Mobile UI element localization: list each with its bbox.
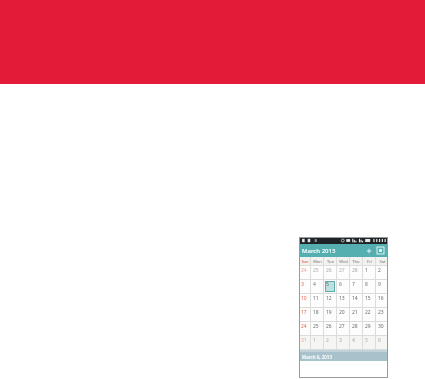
button[interactable]: 4 <box>311 280 323 293</box>
staticText: 26 <box>326 323 332 330</box>
staticText: 28 <box>352 267 358 274</box>
button[interactable]: 2 <box>324 336 336 349</box>
staticText: 31 <box>301 337 307 344</box>
button[interactable]: 24 <box>299 322 310 335</box>
staticText: 10 <box>301 295 307 302</box>
button[interactable]: 11 <box>311 294 323 307</box>
staticText: 12 <box>326 295 332 302</box>
button[interactable]: 5 <box>363 336 375 349</box>
staticText: 11 <box>313 295 319 302</box>
staticText: 24 <box>301 323 307 330</box>
staticText: 21 <box>352 309 358 316</box>
button[interactable]: 6 <box>376 336 388 349</box>
staticText: 25 <box>313 323 319 330</box>
staticText: Tue <box>327 259 334 264</box>
button[interactable]: 19 <box>324 308 336 321</box>
staticText: 23 <box>378 309 384 316</box>
staticText: Sat <box>379 259 386 264</box>
button[interactable]: 4 <box>350 336 362 349</box>
button[interactable]: 1 <box>363 266 375 279</box>
staticText: 19 <box>326 309 332 316</box>
staticText: 2 <box>326 337 329 344</box>
button[interactable]: 3 <box>337 336 349 349</box>
button[interactable]: 24 <box>299 266 310 279</box>
button[interactable]: 27 <box>337 322 349 335</box>
button[interactable]: Switch view <box>375 245 386 256</box>
staticText: 15 <box>365 295 371 302</box>
button[interactable]: 17 <box>299 308 310 321</box>
button[interactable]: 20 <box>337 308 349 321</box>
button[interactable]: 26 <box>324 322 336 335</box>
staticText: 6 <box>339 281 342 288</box>
staticText: 28 <box>352 323 358 330</box>
button[interactable]: 23 <box>376 308 388 321</box>
button[interactable]: 22 <box>363 308 375 321</box>
button[interactable]: 12 <box>324 294 336 307</box>
staticText: 7 <box>352 281 355 288</box>
button[interactable]: 5 <box>324 280 336 293</box>
staticText: Sun <box>301 259 309 264</box>
staticText: 1 <box>365 267 368 274</box>
staticText: 14 <box>352 295 358 302</box>
button[interactable]: 14 <box>350 294 362 307</box>
staticText: 27 <box>339 267 345 274</box>
button[interactable]: 25 <box>311 322 323 335</box>
button[interactable]: 26 <box>324 266 336 279</box>
button[interactable]: New event <box>363 245 374 256</box>
button[interactable]: 10 <box>299 294 310 307</box>
button[interactable]: 13 <box>337 294 349 307</box>
staticText: 13 <box>339 295 345 302</box>
button[interactable]: 9 <box>376 280 388 293</box>
staticText: 5 <box>326 281 329 288</box>
button[interactable]: 15 <box>363 294 375 307</box>
staticText: 9 <box>378 281 381 288</box>
button[interactable]: 29 <box>363 322 375 335</box>
button[interactable]: 6 <box>337 280 349 293</box>
staticText: 6 <box>378 337 381 344</box>
staticText: 16 <box>378 295 384 302</box>
button[interactable]: 2 <box>376 266 388 279</box>
staticText: 25 <box>313 267 319 274</box>
staticText: Fri <box>367 259 372 264</box>
staticText: 22 <box>365 309 371 316</box>
button[interactable]: 28 <box>350 266 362 279</box>
staticText: 30 <box>378 323 384 330</box>
staticText: 8 <box>365 281 368 288</box>
button[interactable]: 25 <box>311 266 323 279</box>
staticText: 4 <box>313 281 316 288</box>
button[interactable]: 31 <box>299 336 310 349</box>
button[interactable]: 30 <box>376 322 388 335</box>
staticText: 26 <box>326 267 332 274</box>
staticText: 20 <box>339 309 345 316</box>
staticText: 1 <box>313 337 316 344</box>
staticText: March 6, 2013 <box>302 354 332 360</box>
button[interactable]: 8 <box>363 280 375 293</box>
staticText: Thu <box>352 259 360 264</box>
button[interactable]: 27 <box>337 266 349 279</box>
staticText: 18 <box>313 309 319 316</box>
staticText: 27 <box>339 323 345 330</box>
button[interactable]: 18 <box>311 308 323 321</box>
staticText: 17 <box>301 309 307 316</box>
button[interactable]: 21 <box>350 308 362 321</box>
button[interactable]: 1 <box>311 336 323 349</box>
staticText: Wed <box>339 259 348 264</box>
staticText: 3 <box>301 281 304 288</box>
button[interactable]: 7 <box>350 280 362 293</box>
button[interactable]: 28 <box>350 322 362 335</box>
staticText: 24 <box>301 267 307 274</box>
button[interactable]: 3 <box>299 280 310 293</box>
staticText: 29 <box>365 323 371 330</box>
staticText: 3 <box>339 337 342 344</box>
staticText: Mon <box>313 259 322 264</box>
staticText: March 2013 <box>302 247 336 255</box>
button[interactable]: March 6, 2013 <box>299 352 388 361</box>
button[interactable]: 16 <box>376 294 388 307</box>
staticText: 5 <box>365 337 368 344</box>
staticText: 4 <box>352 337 355 344</box>
staticText: 2 <box>378 267 381 274</box>
